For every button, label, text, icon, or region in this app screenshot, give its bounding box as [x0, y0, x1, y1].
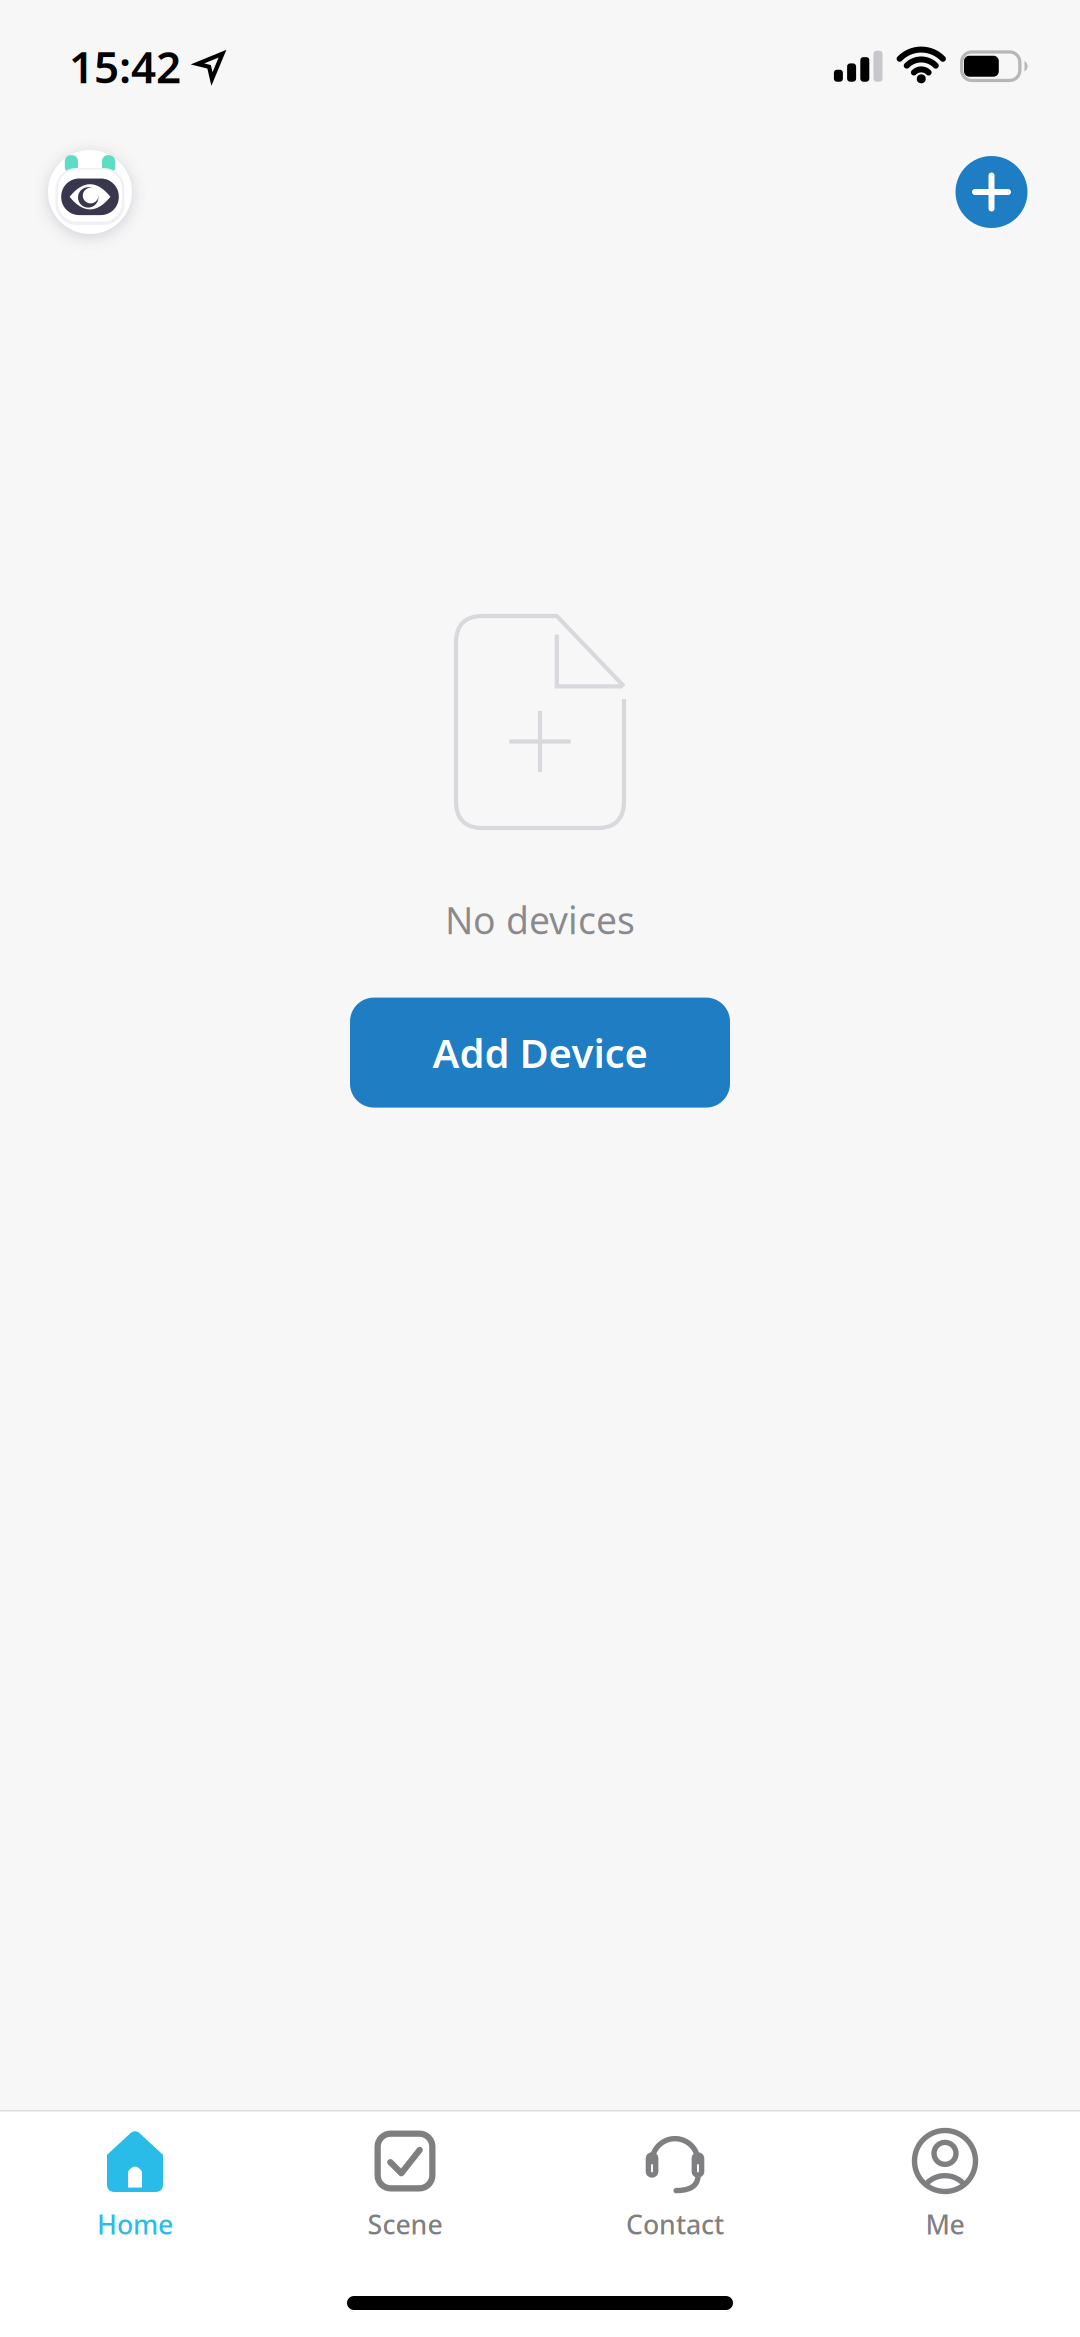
button[interactable]: Profile	[48, 150, 132, 234]
button[interactable]: Scene	[270, 2129, 540, 2242]
staticText: Add Device	[432, 1026, 647, 1079]
button[interactable]: Home	[0, 2129, 270, 2242]
staticText: Home	[97, 2206, 173, 2242]
staticText: No devices	[445, 895, 635, 945]
button[interactable]: Add	[955, 156, 1027, 228]
button[interactable]: Add Device	[350, 998, 730, 1108]
staticText: Me	[925, 2206, 964, 2242]
button[interactable]: Me	[810, 2129, 1080, 2242]
button[interactable]: Contact	[540, 2129, 810, 2242]
staticText: Scene	[367, 2206, 442, 2242]
staticText: 15:42	[69, 37, 181, 95]
staticText: Contact	[626, 2206, 724, 2242]
